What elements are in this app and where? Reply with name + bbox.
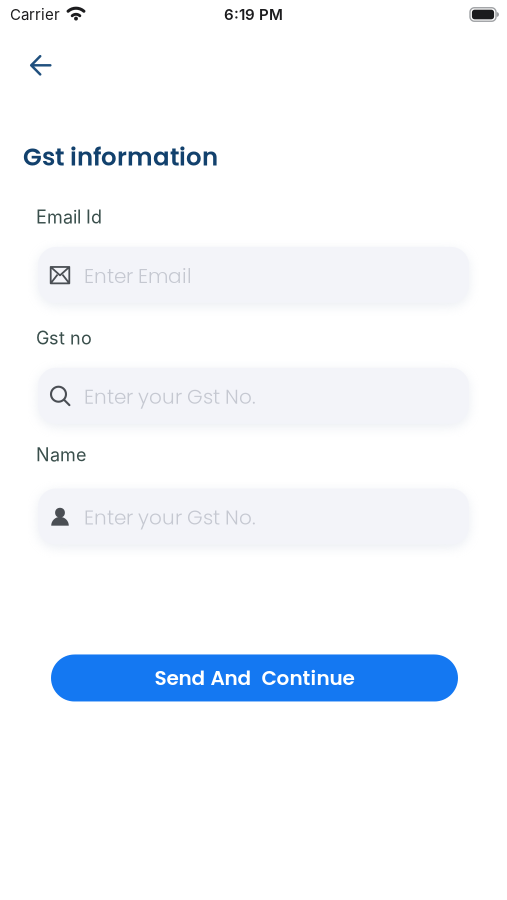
- staticText: Enter your Gst No.: [84, 383, 256, 411]
- button[interactable]: Back: [30, 55, 51, 76]
- staticText: Gst no: [36, 327, 92, 349]
- staticText: Email Id: [36, 206, 102, 228]
- staticText: Gst information: [23, 140, 218, 174]
- button[interactable]: Gst no, Enter your Gst No.: [38, 368, 469, 424]
- button[interactable]: Email Id, Enter Email: [38, 247, 469, 303]
- staticText: Carrier: [10, 5, 60, 24]
- staticText: Send And Continue: [154, 664, 354, 692]
- staticText: Enter Email: [84, 262, 192, 290]
- staticText: Name: [36, 444, 86, 465]
- button[interactable]: Name, Enter your Gst No.: [38, 488, 469, 544]
- button[interactable]: Send And Continue: [51, 654, 458, 701]
- staticText: 6:19 PM: [224, 5, 283, 24]
- staticText: Enter your Gst No.: [84, 503, 256, 531]
